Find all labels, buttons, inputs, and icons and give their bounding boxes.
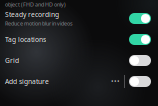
- button[interactable]: Tag locations: [0, 29, 158, 50]
- staticText: Reduce motion blur in videos: [5, 20, 73, 27]
- staticText: Add signature: [5, 77, 49, 86]
- staticText: Tag locations: [5, 35, 46, 44]
- staticText: Steady recording: [5, 10, 59, 19]
- staticText: •••: [111, 77, 120, 86]
- button[interactable]: Grid: [0, 50, 158, 71]
- button[interactable]: Steady recording: [0, 8, 158, 29]
- staticText: object (FHD and HD only): [5, 1, 66, 8]
- button[interactable]: Add signature: [0, 71, 158, 92]
- staticText: Grid: [5, 56, 19, 65]
